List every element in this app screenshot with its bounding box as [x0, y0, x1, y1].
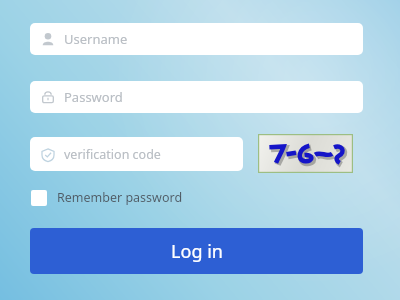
staticText: Log in	[171, 239, 223, 264]
staticText: Remember password	[57, 189, 183, 206]
button[interactable]: Remember password	[31, 189, 183, 206]
staticText: Password	[64, 88, 123, 106]
button[interactable]: Username	[30, 23, 363, 55]
button[interactable]: Refresh verification code image	[258, 134, 353, 173]
staticText: Username	[64, 30, 128, 48]
button[interactable]: Password	[30, 81, 363, 113]
button[interactable]: verification code	[30, 137, 243, 171]
button[interactable]: Log in	[30, 228, 363, 274]
staticText: verification code	[64, 146, 161, 163]
